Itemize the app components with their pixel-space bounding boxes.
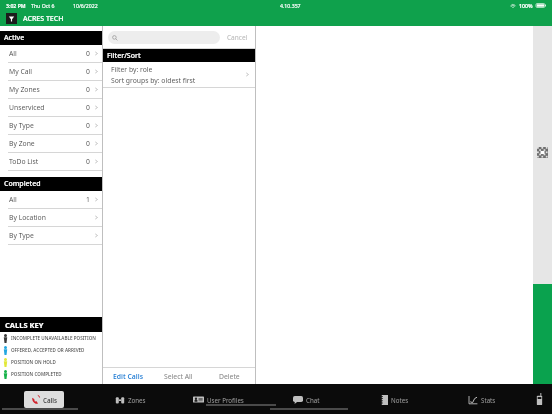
button[interactable]: Unserviced (0, 99, 103, 116)
button[interactable]: All (0, 45, 103, 62)
staticText: CALLS KEY (5, 320, 44, 330)
staticText: 0 (86, 49, 90, 58)
button[interactable]: Chat (287, 391, 326, 408)
staticText: Thu Oct 6 (31, 2, 55, 9)
staticText: Calls (43, 396, 58, 404)
staticText: By Zone (9, 139, 35, 148)
button[interactable]: My Call (0, 63, 103, 80)
button[interactable]: ToDo List (0, 153, 103, 170)
button[interactable]: Keypad (534, 144, 550, 160)
staticText: All (9, 195, 17, 204)
staticText: ACRES TECH (23, 14, 64, 24)
button[interactable]: User Profiles (187, 391, 250, 408)
staticText: 4.10.357 (280, 2, 301, 9)
staticText: Zones (128, 396, 146, 404)
button[interactable] (108, 31, 220, 44)
staticText: Select All (164, 372, 193, 381)
staticText: 0 (86, 103, 90, 112)
staticText: Stats (481, 396, 496, 404)
staticText: ToDo List (9, 157, 39, 166)
staticText: Filter/Sort (107, 51, 141, 61)
staticText: Notes (391, 396, 409, 404)
staticText: By Type (9, 121, 34, 130)
button[interactable]: Select All (153, 368, 204, 384)
button[interactable]: Edit Calls (103, 368, 153, 384)
button[interactable]: By Zone (0, 135, 103, 152)
button[interactable]: Zones (109, 391, 152, 408)
staticText: 3:02 PM (6, 2, 26, 9)
button[interactable]: By Type (0, 227, 103, 244)
staticText: Edit Calls (113, 372, 144, 381)
button[interactable]: All (0, 191, 103, 208)
button[interactable]: Calls (24, 391, 64, 408)
staticText: Chat (306, 396, 320, 404)
staticText: Completed (4, 179, 41, 189)
staticText: 0 (86, 121, 90, 130)
staticText: 0 (86, 157, 90, 166)
staticText: POSITION ON HOLD (11, 359, 56, 365)
staticText: Sort groups by: oldest first (111, 76, 196, 85)
staticText: INCOMPLETE UNAVAILABLE POSITION (11, 335, 96, 341)
button[interactable]: Filter by: role (103, 62, 255, 87)
staticText: POSITION COMPLETED (11, 371, 62, 377)
button[interactable]: Stats (462, 391, 502, 408)
staticText: My Zones (9, 85, 40, 94)
staticText: Filter by: role (111, 65, 153, 74)
staticText: My Call (9, 67, 33, 76)
staticText: 100% (519, 2, 533, 9)
staticText: By Type (9, 231, 34, 240)
staticText: Cancel (227, 33, 248, 42)
button[interactable]: My Zones (0, 81, 103, 98)
staticText: Delete (219, 372, 240, 381)
staticText: 0 (86, 85, 90, 94)
staticText: By Location (9, 213, 46, 222)
staticText: 10/6/2022 (73, 2, 98, 9)
staticText: User Profiles (207, 396, 244, 404)
staticText: OFFERED, ACCEPTED OR ARRIVED (11, 347, 85, 353)
button[interactable]: Radio (526, 384, 552, 414)
button[interactable]: Delete (204, 368, 255, 384)
staticText: All (9, 49, 17, 58)
button[interactable]: Notes (374, 391, 415, 408)
button[interactable]: By Location (0, 209, 103, 226)
staticText: 0 (86, 139, 90, 148)
staticText: Active (4, 33, 25, 43)
staticText: 0 (86, 67, 90, 76)
staticText: 1 (86, 195, 90, 204)
button[interactable]: Cancel (225, 31, 250, 44)
button[interactable]: By Type (0, 117, 103, 134)
staticText: Unserviced (9, 103, 45, 112)
